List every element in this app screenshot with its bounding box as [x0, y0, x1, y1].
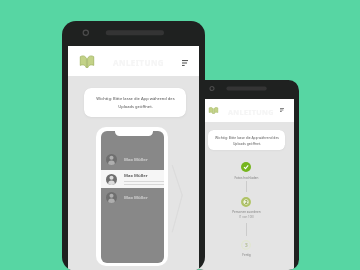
- staticText: Max Müller: [124, 157, 148, 163]
- button[interactable]: Sortieren: [280, 108, 284, 112]
- staticText: Fertig: [242, 253, 251, 257]
- staticText: Personen zuordnen: [232, 210, 261, 214]
- button[interactable]: Fertig: [241, 240, 251, 250]
- staticText: Wichtig: Bitte lasse die App während des…: [215, 135, 279, 146]
- staticText: Max Müller: [124, 173, 148, 179]
- staticText: (1 von 100): [239, 215, 254, 219]
- button[interactable]: Max Müller: [101, 170, 164, 188]
- button[interactable]: Sortieren: [182, 60, 188, 66]
- staticText: Wichtig: Bitte lasse die App während des…: [96, 96, 175, 109]
- staticText: Max Müller: [124, 195, 148, 201]
- button[interactable]: Fotos hochladen: [241, 162, 251, 172]
- staticText: 2: [245, 199, 248, 205]
- button[interactable]: Max Müller: [101, 150, 164, 169]
- staticText: ANLEITUNG: [228, 107, 274, 117]
- button[interactable]: Personen zuordnen: [241, 197, 251, 207]
- button[interactable]: Anleitung: [80, 55, 94, 68]
- staticText: 3: [245, 242, 248, 248]
- button[interactable]: Anleitung: [209, 107, 218, 114]
- staticText: ANLEITUNG: [113, 57, 165, 68]
- button[interactable]: Max Müller: [101, 188, 164, 207]
- staticText: Fotos hochladen: [234, 176, 259, 180]
